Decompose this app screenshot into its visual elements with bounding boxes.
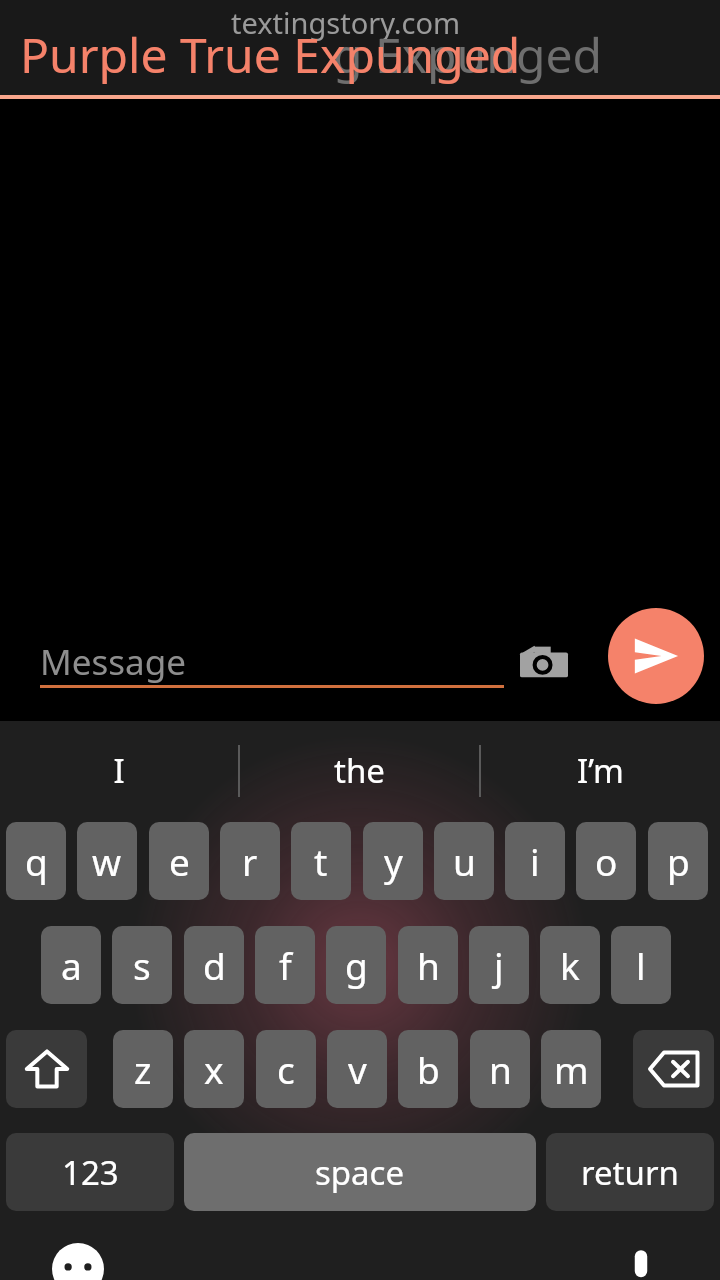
button[interactable]: x bbox=[184, 1030, 244, 1108]
button[interactable]: t bbox=[291, 822, 351, 900]
staticText: f bbox=[279, 940, 292, 990]
button[interactable]: i bbox=[505, 822, 565, 900]
staticText: q bbox=[25, 836, 48, 886]
staticText: n bbox=[489, 1044, 512, 1094]
staticText: k bbox=[560, 940, 580, 990]
button[interactable]: p bbox=[648, 822, 708, 900]
button[interactable]: e bbox=[149, 822, 209, 900]
button[interactable]: Emoji bbox=[42, 1243, 114, 1280]
staticText: h bbox=[417, 940, 440, 990]
staticText: textingstory.com bbox=[231, 3, 461, 42]
button[interactable]: Purple True Expunged bbox=[20, 22, 521, 87]
button[interactable]: m bbox=[541, 1030, 601, 1108]
button[interactable]: Message bbox=[40, 638, 186, 686]
button[interactable]: u bbox=[434, 822, 494, 900]
staticText: I bbox=[113, 748, 125, 793]
button[interactable]: b bbox=[398, 1030, 458, 1108]
button[interactable]: return bbox=[546, 1133, 714, 1211]
staticText: g bbox=[345, 940, 368, 990]
button[interactable]: Camera bbox=[508, 626, 580, 698]
button[interactable]: I’m bbox=[481, 721, 720, 820]
staticText: j bbox=[494, 940, 504, 990]
button[interactable]: s bbox=[112, 926, 172, 1004]
staticText: e bbox=[169, 836, 190, 886]
staticText: u bbox=[453, 836, 476, 886]
staticText: z bbox=[134, 1044, 152, 1094]
button[interactable]: w bbox=[77, 822, 137, 900]
staticText: 123 bbox=[62, 1150, 119, 1195]
staticText: c bbox=[277, 1044, 295, 1094]
staticText: space bbox=[315, 1150, 405, 1195]
button[interactable]: I bbox=[0, 721, 238, 820]
button[interactable]: Send bbox=[608, 608, 704, 704]
staticText: g Expunged bbox=[333, 22, 603, 87]
button[interactable]: Backspace bbox=[633, 1030, 714, 1108]
button[interactable]: d bbox=[184, 926, 244, 1004]
button[interactable]: 123 bbox=[6, 1133, 174, 1211]
button[interactable]: v bbox=[327, 1030, 387, 1108]
button[interactable]: j bbox=[469, 926, 529, 1004]
staticText: return bbox=[581, 1150, 679, 1195]
staticText: x bbox=[204, 1044, 224, 1094]
button[interactable]: f bbox=[255, 926, 315, 1004]
button[interactable]: k bbox=[540, 926, 600, 1004]
staticText: s bbox=[133, 940, 151, 990]
staticText: w bbox=[92, 836, 122, 886]
button[interactable]: a bbox=[41, 926, 101, 1004]
staticText: l bbox=[636, 940, 646, 990]
button[interactable]: Shift bbox=[6, 1030, 87, 1108]
button[interactable]: space bbox=[184, 1133, 536, 1211]
staticText: i bbox=[530, 836, 540, 886]
staticText: v bbox=[348, 1044, 367, 1094]
button[interactable]: c bbox=[256, 1030, 316, 1108]
button[interactable]: Voice input bbox=[605, 1243, 677, 1280]
staticText: o bbox=[595, 836, 618, 886]
staticText: b bbox=[417, 1044, 440, 1094]
staticText: d bbox=[203, 940, 226, 990]
button[interactable]: g bbox=[326, 926, 386, 1004]
button[interactable]: y bbox=[363, 822, 423, 900]
staticText: t bbox=[314, 836, 328, 886]
staticText: m bbox=[554, 1044, 589, 1094]
button[interactable]: the bbox=[240, 721, 479, 820]
button[interactable]: o bbox=[576, 822, 636, 900]
button[interactable]: q bbox=[6, 822, 66, 900]
staticText: p bbox=[667, 836, 690, 886]
button[interactable]: n bbox=[470, 1030, 530, 1108]
button[interactable]: l bbox=[611, 926, 671, 1004]
staticText: the bbox=[334, 748, 385, 793]
staticText: a bbox=[61, 940, 82, 990]
staticText: y bbox=[384, 836, 403, 886]
button[interactable]: h bbox=[398, 926, 458, 1004]
staticText: r bbox=[242, 836, 258, 886]
staticText: I’m bbox=[577, 748, 624, 793]
button[interactable]: r bbox=[220, 822, 280, 900]
button[interactable]: z bbox=[113, 1030, 173, 1108]
